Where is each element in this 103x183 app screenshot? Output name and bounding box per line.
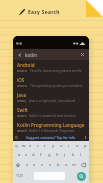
button[interactable]: iOS (13, 75, 89, 90)
staticText: b (57, 162, 60, 168)
staticText: h (56, 152, 59, 158)
button[interactable]: Clear (78, 50, 87, 59)
staticText: kotlin (25, 52, 38, 58)
staticText: Java is a high-level, class-based (29, 99, 76, 103)
staticText: www.s (17, 114, 27, 118)
staticText: Kotlin Programming Language (17, 122, 85, 128)
button[interactable]: a (16, 151, 23, 159)
staticText: www.k (17, 129, 27, 133)
button[interactable]: e (27, 142, 34, 150)
staticText: q (15, 143, 18, 149)
button[interactable]: o (73, 142, 81, 150)
staticText: v (49, 162, 52, 168)
button[interactable]: ?123 (13, 169, 25, 183)
staticText: n (65, 162, 68, 168)
staticText: a (18, 152, 21, 158)
button[interactable]: Kotlin Programming Language (13, 120, 89, 135)
button[interactable]: Edit (19, 5, 60, 19)
staticText: i (68, 143, 70, 149)
staticText: . (69, 174, 71, 179)
staticText: r (37, 143, 39, 149)
button[interactable]: x (30, 160, 38, 169)
staticText: w (22, 143, 26, 149)
button[interactable]: Android (13, 60, 89, 75)
button[interactable]: n (62, 160, 70, 169)
staticText: www.a (17, 69, 28, 73)
staticText: t (44, 143, 46, 149)
staticText: Easy Search (28, 9, 60, 16)
staticText: Java (17, 92, 27, 98)
button[interactable]: Back (15, 50, 24, 59)
button[interactable]: g (45, 151, 53, 159)
staticText: c (41, 162, 44, 168)
staticText: www.a (17, 84, 28, 88)
staticText: www.j (17, 99, 27, 103)
button[interactable]: h (53, 151, 61, 159)
button[interactable]: j (61, 151, 69, 159)
staticText: , (28, 174, 30, 179)
button[interactable]: Java (13, 90, 89, 105)
staticText: The operating system pre-installed (30, 84, 82, 88)
button[interactable]: Swift (13, 105, 89, 120)
button[interactable]: z (23, 160, 30, 169)
button[interactable]: c (38, 160, 46, 169)
staticText: o (76, 143, 79, 149)
button[interactable]: f (37, 151, 45, 159)
button[interactable]: Backspace (78, 160, 89, 169)
staticText: Suggest contacts? Tap for info (26, 135, 76, 140)
button[interactable]: w (20, 142, 27, 150)
button[interactable]: y (49, 142, 57, 150)
button[interactable]: p (81, 142, 89, 150)
staticText: p (84, 143, 87, 149)
staticText: ?123 (16, 174, 23, 178)
staticText: z (26, 162, 28, 168)
staticText: e (29, 143, 32, 149)
button[interactable]: Suggest contacts? Tap for info (13, 134, 89, 141)
button[interactable]: m (70, 160, 78, 169)
staticText: u (60, 143, 63, 149)
staticText: Android (17, 62, 35, 68)
staticText: m (72, 162, 76, 168)
staticText: d (32, 152, 35, 158)
staticText: s (25, 152, 28, 158)
staticText: k (72, 152, 75, 158)
staticText: iOS (17, 77, 25, 83)
staticText: f (40, 152, 42, 158)
button[interactable]: Search (77, 172, 86, 181)
button[interactable]: b (54, 160, 62, 169)
staticText: Swift is a powerful and intuitive (29, 114, 76, 118)
staticText: l (80, 152, 82, 158)
staticText: g (48, 152, 51, 158)
button[interactable]: l (77, 151, 85, 159)
staticText: Kotlin 1.0 Released: Pragmatic (29, 129, 75, 133)
other: Edit (19, 9, 25, 15)
button[interactable]: s (23, 151, 30, 159)
button[interactable]: q (13, 142, 20, 150)
button[interactable]: Shift (13, 160, 23, 169)
button[interactable]: , (25, 169, 33, 183)
staticText: j (64, 152, 66, 158)
button[interactable]: i (65, 142, 73, 150)
staticText: x (33, 162, 36, 168)
button[interactable]: u (57, 142, 65, 150)
button[interactable]: t (41, 142, 49, 150)
button[interactable]: k (69, 151, 77, 159)
staticText: y (52, 143, 55, 149)
button[interactable]: d (30, 151, 37, 159)
staticText: Find the latest and greatest on the (30, 69, 82, 73)
button[interactable]: v (46, 160, 54, 169)
staticText: Swift (17, 107, 28, 113)
button[interactable]: r (34, 142, 41, 150)
